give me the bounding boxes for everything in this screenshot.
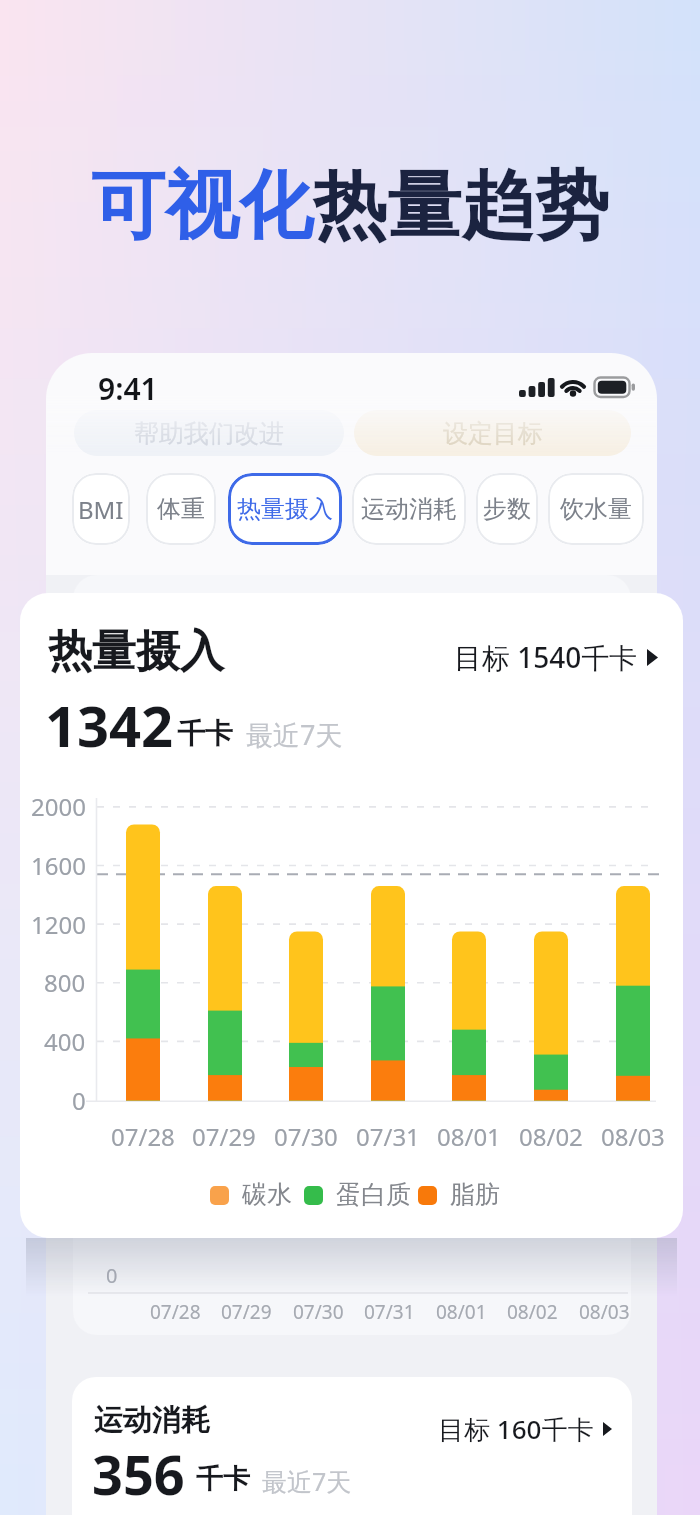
staticText: 饮水量 bbox=[560, 494, 632, 524]
staticText: 目标 1540千卡 bbox=[454, 638, 638, 676]
staticText: 蛋白质 bbox=[336, 1179, 411, 1210]
button[interactable]: 运动消耗 bbox=[352, 473, 466, 545]
staticText: 08/01 bbox=[437, 1120, 501, 1153]
staticText: 08/03 bbox=[601, 1120, 665, 1153]
staticText: 08/02 bbox=[519, 1120, 583, 1153]
staticText: 07/29 bbox=[221, 1299, 272, 1325]
staticText: 356 bbox=[92, 1437, 185, 1511]
staticText: 0 bbox=[106, 1262, 118, 1289]
staticText: 08/01 bbox=[436, 1299, 487, 1325]
button[interactable]: 目标 1540千卡 bbox=[330, 637, 658, 677]
staticText: 9:41 bbox=[98, 368, 158, 409]
staticText: 07/31 bbox=[356, 1120, 420, 1153]
staticText: 最近7天 bbox=[246, 716, 343, 753]
staticText: 运动消耗 bbox=[94, 1402, 210, 1439]
staticText: 400 bbox=[44, 1025, 86, 1057]
button[interactable]: 体重 bbox=[146, 473, 216, 545]
staticText: 体重 bbox=[157, 494, 205, 524]
staticText: 07/28 bbox=[150, 1299, 201, 1325]
staticText: 07/29 bbox=[192, 1120, 256, 1153]
staticText: 1200 bbox=[31, 908, 86, 940]
staticText: 最近7天 bbox=[262, 1464, 352, 1498]
staticText: 07/30 bbox=[293, 1299, 344, 1325]
staticText: 1342 bbox=[45, 687, 174, 763]
button[interactable]: 设定目标 bbox=[354, 410, 631, 456]
staticText: 08/02 bbox=[507, 1299, 558, 1325]
staticText: 08/03 bbox=[579, 1299, 630, 1325]
staticText: 1600 bbox=[31, 849, 86, 881]
staticText: 800 bbox=[44, 966, 86, 998]
button[interactable]: 热量摄入 bbox=[228, 473, 342, 545]
button[interactable]: 目标 160千卡 bbox=[350, 1408, 612, 1450]
staticText: 07/30 bbox=[274, 1120, 338, 1153]
button[interactable]: 步数 bbox=[476, 473, 538, 545]
staticText: 帮助我们改进 bbox=[134, 418, 284, 449]
staticText: 设定目标 bbox=[443, 418, 543, 449]
staticText: 碳水 bbox=[242, 1179, 292, 1210]
staticText: 目标 160千卡 bbox=[438, 1411, 594, 1447]
staticText: 千卡 bbox=[196, 1462, 250, 1496]
staticText: BMI bbox=[78, 493, 124, 526]
staticText: 步数 bbox=[483, 494, 531, 524]
staticText: 0 bbox=[72, 1084, 86, 1116]
button[interactable]: 帮助我们改进 bbox=[74, 410, 344, 456]
staticText: 07/28 bbox=[111, 1120, 175, 1153]
button[interactable]: BMI bbox=[72, 473, 130, 545]
staticText: 2000 bbox=[31, 790, 86, 822]
staticText: 热量摄入 bbox=[48, 624, 224, 679]
staticText: 可视化热量趋势 bbox=[91, 160, 609, 253]
staticText: 07/31 bbox=[364, 1299, 415, 1325]
staticText: 脂肪 bbox=[450, 1179, 500, 1210]
staticText: 热量摄入 bbox=[237, 494, 333, 524]
staticText: 运动消耗 bbox=[361, 494, 457, 524]
staticText: 千卡 bbox=[177, 716, 233, 751]
button[interactable]: 饮水量 bbox=[548, 473, 644, 545]
